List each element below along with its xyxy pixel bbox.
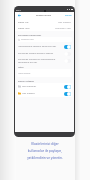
staticText: Paylaşılan Kullanıcılar xyxy=(18,34,42,37)
button[interactable]: Paylaşılan klasörü kullanıcı silebilir xyxy=(18,50,71,57)
staticText: Paylaş xyxy=(65,14,72,17)
staticText: Kullanıcı ara xyxy=(21,38,34,41)
staticText: Klasör Adı xyxy=(18,21,29,24)
staticText: 9:41 xyxy=(16,8,21,11)
staticText: Tüm Klasörler xyxy=(22,85,37,88)
button[interactable]: Kullanıcı ara xyxy=(18,37,71,42)
button[interactable]: ABC Klasörü xyxy=(18,90,71,97)
staticText: Yetki seçiniz xyxy=(18,72,31,75)
button[interactable]: Paylaş xyxy=(65,14,72,17)
button[interactable]: Paylaşılan kullanıcının yetkilendirme ya… xyxy=(18,57,71,64)
staticText: Klasör Yolu xyxy=(18,27,30,30)
button[interactable]: Yetki seçiniz xyxy=(18,69,71,77)
button[interactable]: Tüm Klasörler xyxy=(18,83,71,90)
staticText: ABC Klasörü xyxy=(22,92,35,95)
staticText: Paylaşılan kullanıcının yetkilendirme ya… xyxy=(18,58,63,64)
staticText: Ana Dizin / ABC xyxy=(55,27,71,30)
button[interactable]: Geri xyxy=(17,13,22,18)
staticText: ABC Klasörü xyxy=(58,21,71,24)
button[interactable]: Yetkilendirme yetkisini kullanıcıya ver xyxy=(18,43,71,50)
staticText: Klasör Paylaş xyxy=(36,14,51,17)
staticText: Yetki xyxy=(18,66,24,69)
staticText: Klasör Yetkileri xyxy=(18,80,35,83)
staticText: Klasörlerinizi diğer kullanıcılar ile pa… xyxy=(27,142,63,160)
staticText: Paylaşılan klasörü kullanıcı silebilir xyxy=(18,52,63,55)
staticText: Yetkilendirme yetkisini kullanıcıya ver xyxy=(18,45,63,48)
